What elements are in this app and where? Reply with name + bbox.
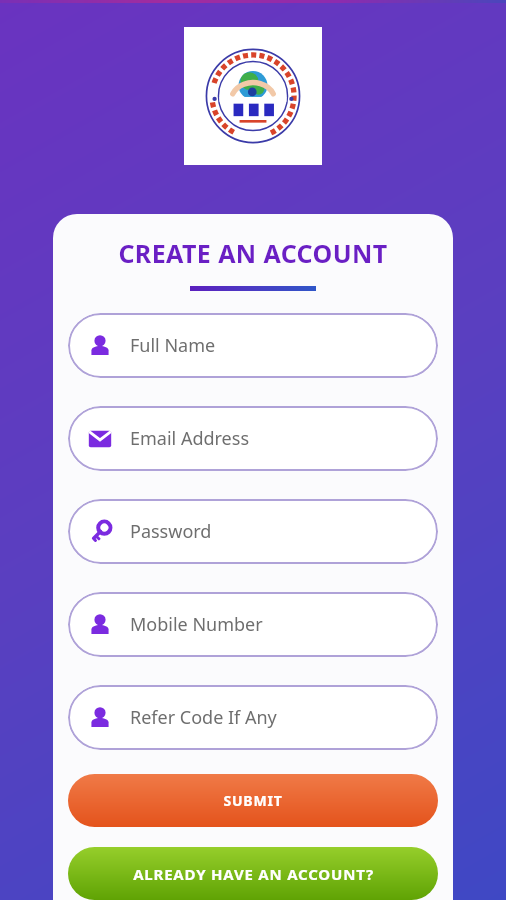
staticText: Email Address [130,426,250,451]
staticText: Password [130,519,212,544]
button[interactable]: ALREADY HAVE AN ACCOUNT? [68,847,438,900]
button[interactable]: Email Address [68,406,438,471]
staticText: Full Name [130,333,216,358]
staticText: Refer Code If Any [130,705,277,730]
button[interactable]: Mobile Number [68,592,438,657]
staticText: ALREADY HAVE AN ACCOUNT? [133,864,374,884]
staticText: SUBMIT [223,791,283,810]
staticText: CREATE AN ACCOUNT [68,236,438,270]
staticText: Mobile Number [130,612,263,637]
button[interactable]: Password [68,499,438,564]
button[interactable]: Refer Code If Any [68,685,438,750]
button[interactable]: Full Name [68,313,438,378]
button[interactable]: SUBMIT [68,774,438,827]
